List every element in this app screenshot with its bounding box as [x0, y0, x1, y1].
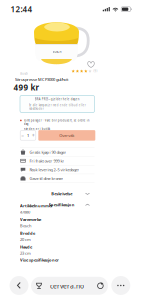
- staticText: +: [32, 132, 35, 139]
- button[interactable]: Gave til dine kroner: [20, 174, 94, 182]
- staticText: Spesifikasjon: [49, 202, 75, 207]
- button[interactable]: Fri frakt over 999 kr: [20, 157, 94, 165]
- button[interactable]: –: [20, 131, 25, 140]
- staticText: Vise spesifikasjoner: [20, 257, 59, 263]
- button[interactable]: Beskrivelse: [20, 189, 94, 198]
- staticText: Tomt på lager · Vare blir produsert, se …: [24, 119, 90, 126]
- staticText: 20 cm: [20, 237, 31, 242]
- staticText: Overvåk: [59, 133, 74, 138]
- staticText: cervera.no: [50, 282, 84, 290]
- staticText: Varemerke: [20, 217, 41, 222]
- button[interactable]: Rask levering 2–5 virkedager: [20, 165, 94, 174]
- button[interactable]: Overvåk: [38, 130, 95, 141]
- button[interactable]: Mer: [111, 276, 130, 295]
- staticText: Bosch: [20, 72, 28, 75]
- staticText: (9): [93, 69, 97, 73]
- staticText: Sitruspresse MCP3000 gul/hvit: [15, 77, 68, 82]
- staticText: Høyde: [20, 244, 32, 249]
- button[interactable]: Legg i favoritter: [85, 58, 97, 70]
- button[interactable]: cervera.no: [31, 277, 108, 295]
- staticText: –: [21, 132, 24, 139]
- staticText: Bosch: [20, 223, 31, 228]
- staticText: BRA PRIS – gjelder hele dagen: [35, 97, 80, 101]
- staticText: 47880: [20, 209, 30, 215]
- staticText: 12:44: [10, 4, 32, 14]
- button[interactable]: Gratis kjøp i 90 dager: [20, 148, 94, 156]
- staticText: når den er i butikk: [24, 127, 50, 131]
- button[interactable]: +: [31, 131, 36, 140]
- staticText: 1: [27, 133, 29, 138]
- staticText: Gratis kjøp i 90 dager: [29, 149, 66, 155]
- staticText: Fri frakt over 999 kr: [29, 158, 64, 163]
- staticText: Se alle kampanjer med ende tilbud eller …: [29, 103, 86, 110]
- staticText: Gave til dine kroner: [29, 176, 63, 181]
- button[interactable]: Tilbake: [9, 276, 28, 295]
- button[interactable]: Vise spesifikasjoner: [20, 258, 94, 262]
- staticText: Rask levering 2–5 virkedager: [29, 167, 79, 172]
- staticText: BOSCH: [52, 50, 61, 54]
- staticText: Beskrivelse: [51, 191, 72, 196]
- staticText: Bredde: [20, 230, 35, 236]
- staticText: 499 kr: [13, 82, 39, 93]
- button[interactable]: Spesifikasjon: [20, 200, 94, 209]
- staticText: 23 cm: [20, 250, 31, 256]
- staticText: Artikkelnummer: [20, 203, 53, 208]
